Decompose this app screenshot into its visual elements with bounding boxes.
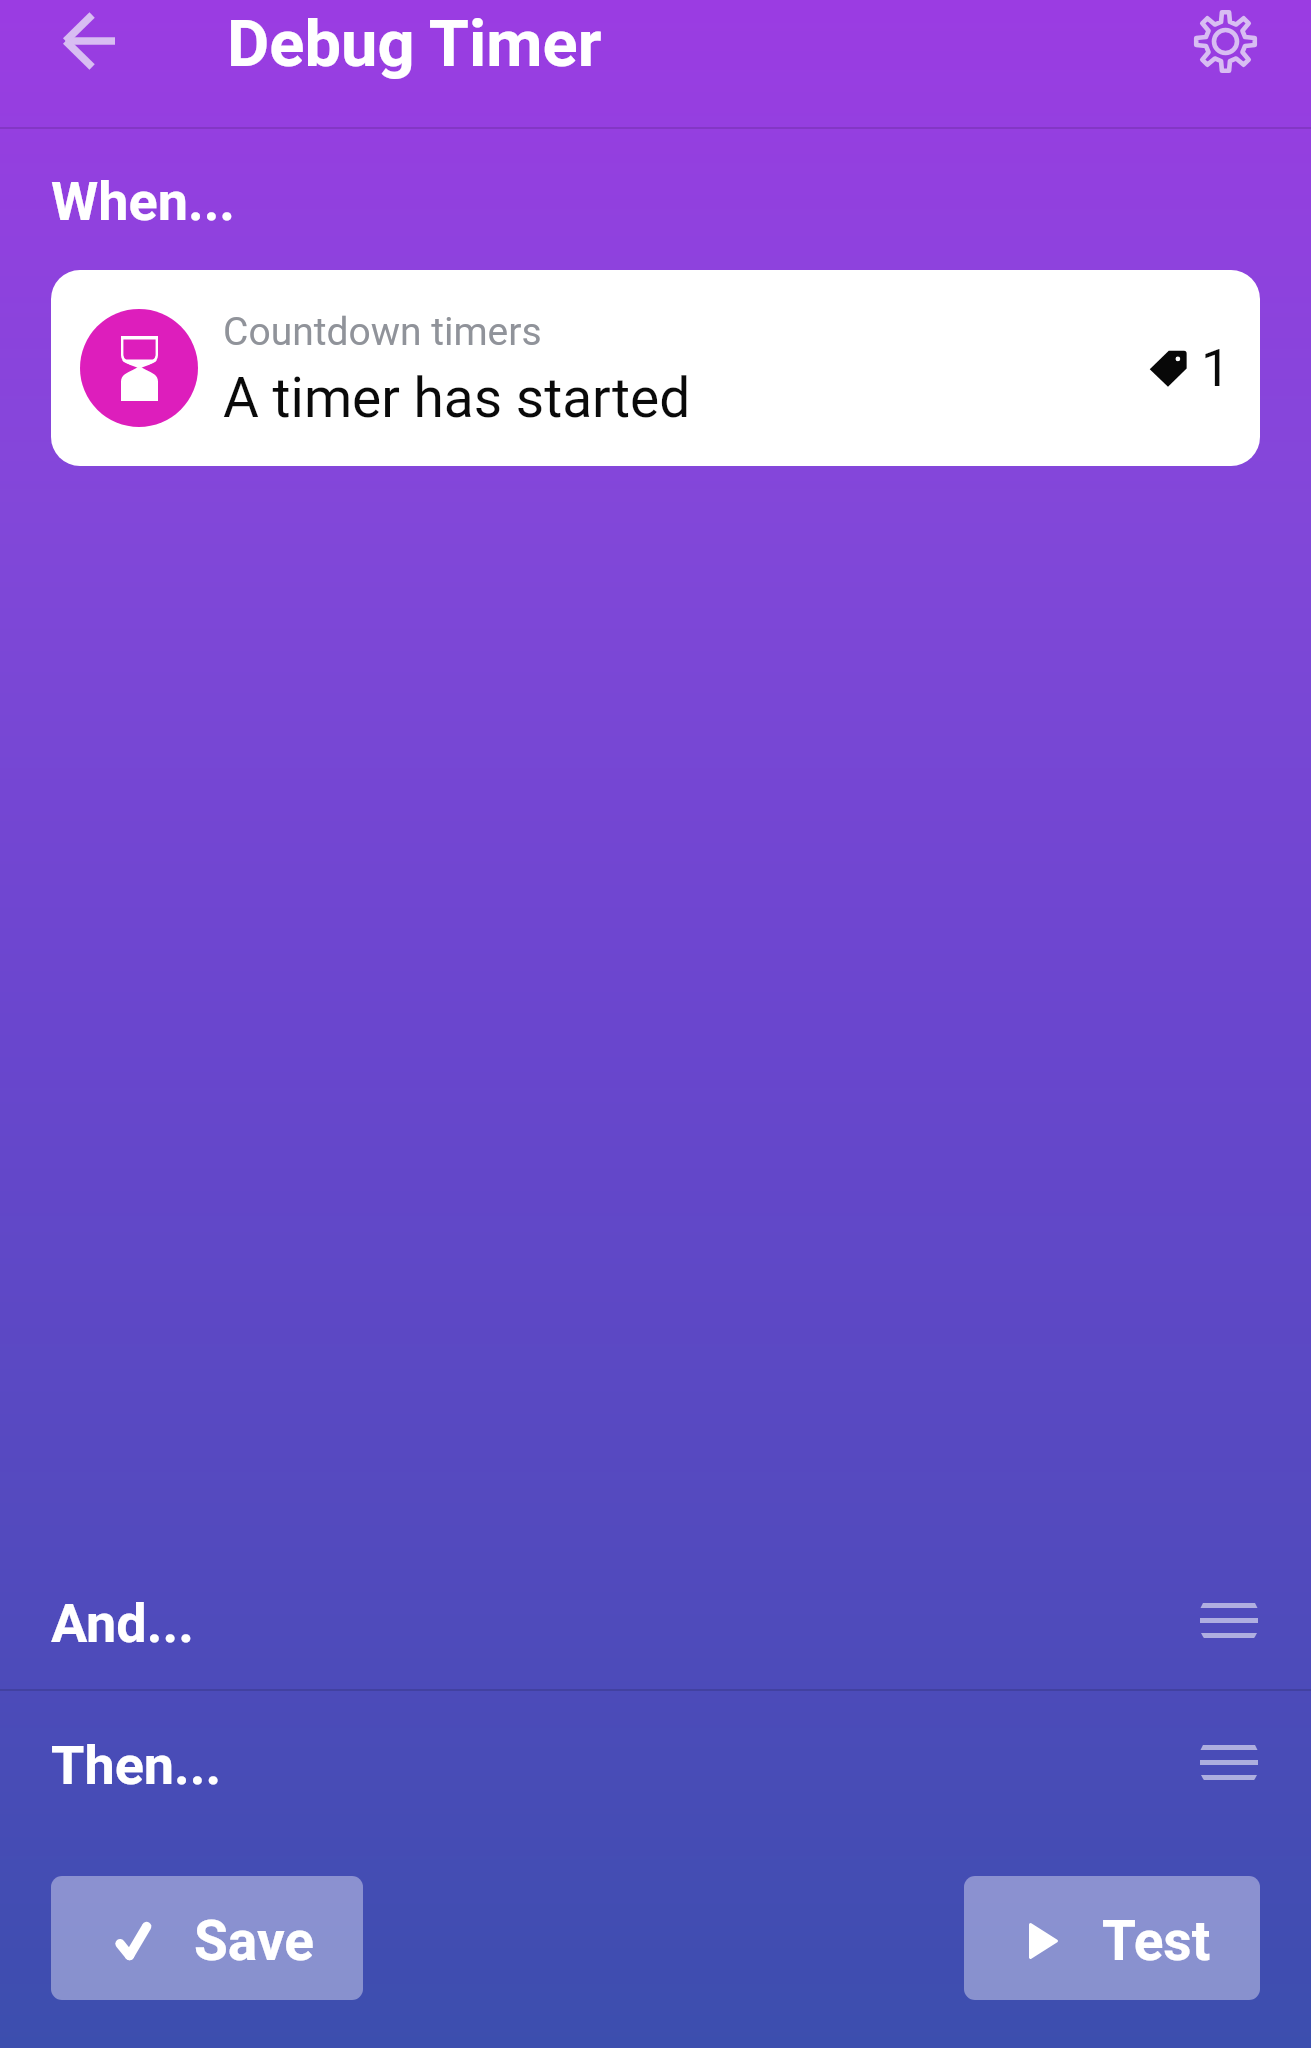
button[interactable]: Reorder [1198, 1731, 1260, 1793]
staticText: Then... [51, 1734, 222, 1797]
staticText: Debug Timer [227, 6, 602, 82]
button[interactable]: And... [0, 1549, 1311, 1689]
staticText: Save [194, 1909, 315, 1973]
button[interactable]: Test [964, 1876, 1260, 2000]
button[interactable]: Save [51, 1876, 363, 2000]
button[interactable]: Then... [0, 1691, 1311, 1831]
button[interactable]: Reorder [1198, 1589, 1260, 1651]
button[interactable]: Countdown timers [51, 270, 1260, 466]
staticText: Test [1102, 1909, 1211, 1973]
button[interactable]: Settings [1181, 0, 1269, 85]
button[interactable]: Back [45, 0, 133, 85]
staticText: When... [51, 170, 236, 233]
staticText: 1 [1201, 338, 1231, 399]
staticText: Countdown timers [223, 309, 542, 355]
staticText: A timer has started [223, 366, 691, 430]
staticText: And... [51, 1592, 194, 1655]
